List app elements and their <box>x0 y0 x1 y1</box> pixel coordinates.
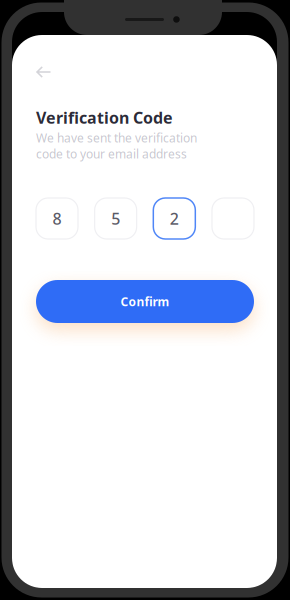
button[interactable]: Back <box>30 60 56 84</box>
staticText: 5 <box>111 208 120 229</box>
button[interactable]: 5 <box>95 198 137 239</box>
staticText: 8 <box>52 208 61 229</box>
button[interactable]: Confirm <box>36 280 254 323</box>
staticText: Verification Code <box>36 107 173 128</box>
staticText: We have sent the verification code to yo… <box>36 130 197 162</box>
button[interactable]: 8 <box>36 198 78 239</box>
staticText: 2 <box>170 208 179 229</box>
button[interactable] <box>212 198 254 239</box>
button[interactable]: 2 <box>153 198 195 239</box>
staticText: Confirm <box>120 293 169 309</box>
